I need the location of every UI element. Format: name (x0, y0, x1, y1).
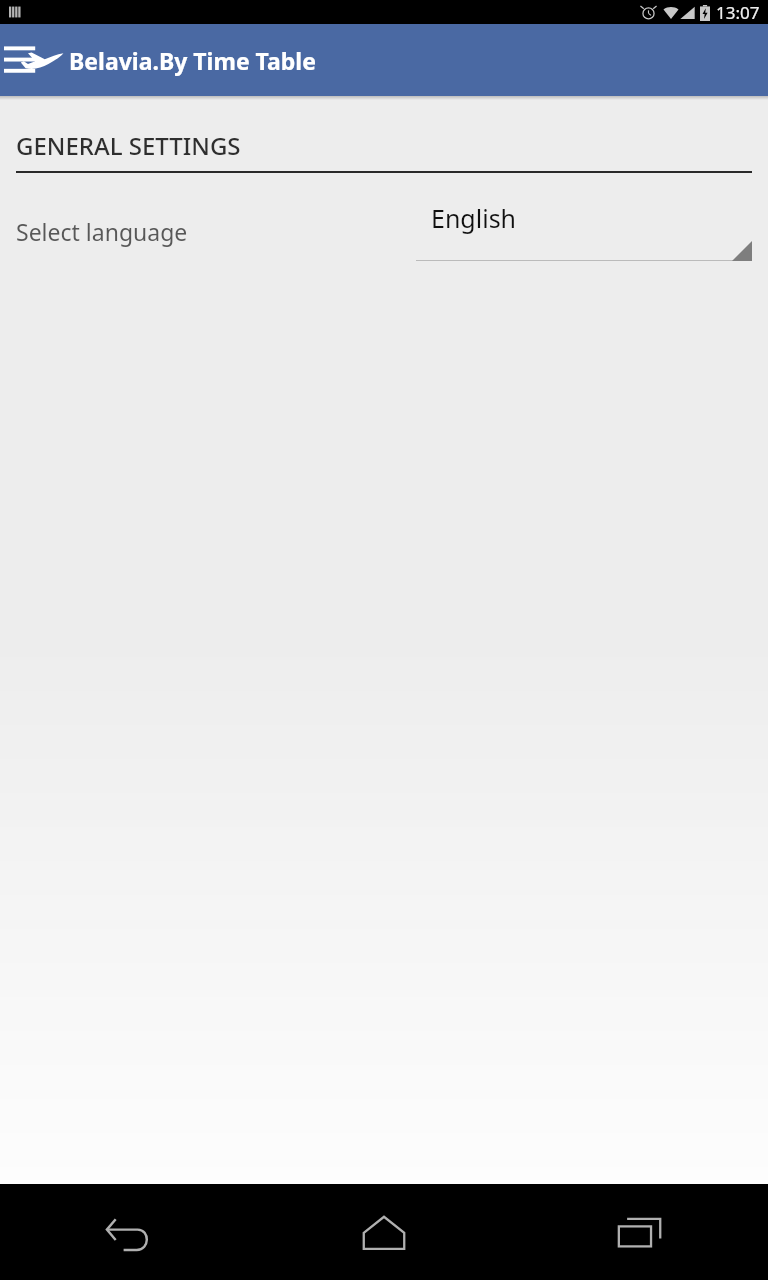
button[interactable]: Home (256, 1184, 512, 1280)
staticText: GENERAL SETTINGS (16, 129, 241, 162)
staticText: English (431, 201, 517, 235)
button[interactable]: Recent apps (512, 1184, 768, 1280)
staticText: 13:07 (716, 1, 760, 24)
button[interactable]: Open navigation menu (2, 24, 66, 96)
button[interactable]: Select language (0, 201, 768, 261)
button[interactable]: Back (0, 1184, 256, 1280)
button[interactable]: English (416, 201, 752, 261)
staticText: Belavia.By Time Table (69, 45, 316, 76)
staticText: Select language (16, 216, 416, 247)
